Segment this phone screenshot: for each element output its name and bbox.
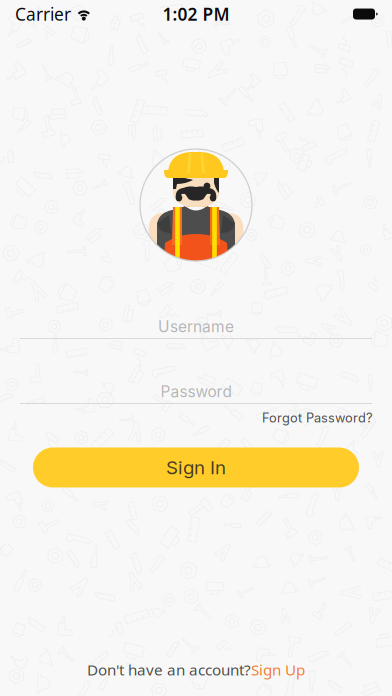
staticText: Don't have an account? xyxy=(87,659,251,680)
button[interactable]: Forgot Password? xyxy=(262,404,373,431)
staticText: 1:02 PM xyxy=(162,2,229,25)
staticText: Forgot Password? xyxy=(262,410,373,425)
staticText: Username xyxy=(158,317,234,336)
staticText: Carrier xyxy=(15,2,71,25)
staticText: Sign In xyxy=(166,456,226,479)
staticText: Password xyxy=(160,382,231,401)
staticText: Sign Up xyxy=(251,659,305,680)
button[interactable]: Sign In xyxy=(33,447,359,487)
button[interactable]: Sign Up xyxy=(251,659,305,680)
